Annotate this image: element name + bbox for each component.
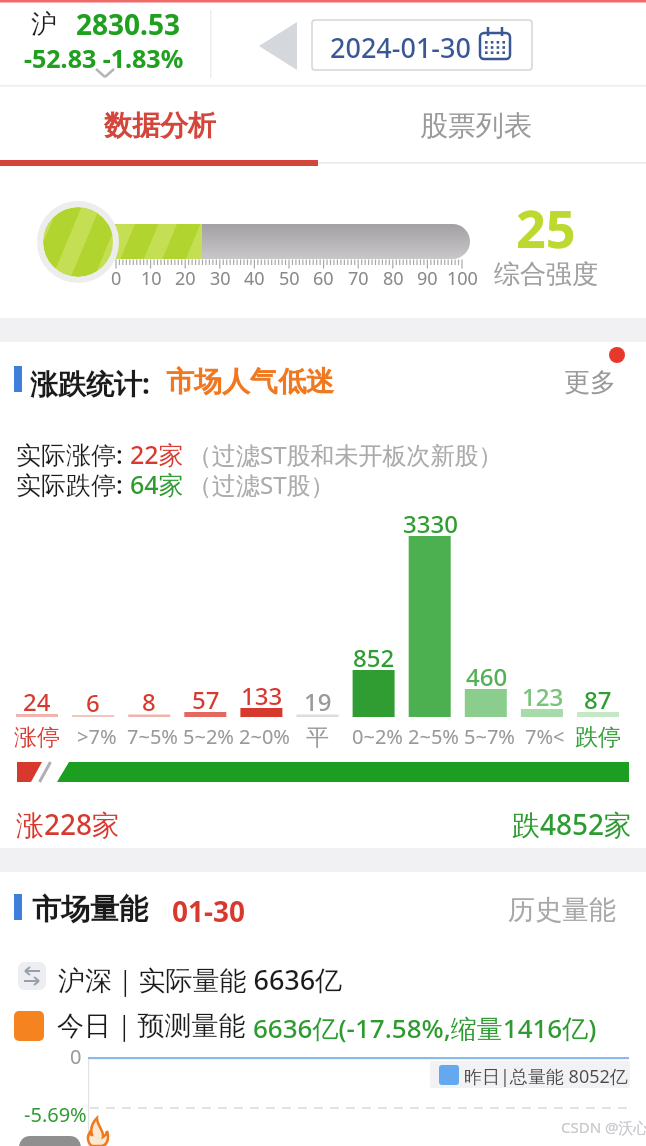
staticText: 7%< <box>525 723 565 750</box>
staticText: 852 <box>353 641 395 674</box>
staticText: 今日｜预测量能 <box>57 1009 246 1043</box>
staticText: 22家 <box>130 437 184 471</box>
staticText: 市场人气低迷 <box>166 364 334 399</box>
staticText: 涨停 <box>14 723 60 752</box>
button[interactable] <box>312 20 532 70</box>
staticText: 跌停 <box>575 723 621 752</box>
staticText: 实际跌停: <box>16 467 123 501</box>
staticText: 5~2% <box>183 723 234 750</box>
staticText: 57 <box>192 683 220 716</box>
button[interactable] <box>250 14 306 76</box>
staticText: >7% <box>77 723 117 750</box>
staticText: 30 <box>210 266 231 291</box>
staticText: 2024-01-30 <box>330 29 471 66</box>
staticText: 60 <box>313 266 334 291</box>
staticText: 19 <box>304 685 332 718</box>
staticText: 3330 <box>403 507 458 540</box>
staticText: -52.83 -1.83% <box>24 41 184 75</box>
staticText: 7~5% <box>127 723 178 750</box>
staticText: -5.69% <box>24 1101 87 1128</box>
staticText: 数据分析 <box>104 108 216 143</box>
staticText: 市场量能 <box>32 891 148 928</box>
staticText: 沪 <box>31 8 57 41</box>
staticText: 50 <box>279 266 300 291</box>
staticText: CSDN @沃心 <box>561 1117 646 1137</box>
staticText: 80 <box>383 266 404 291</box>
staticText: 0 <box>70 1043 82 1070</box>
staticText: 实际涨停: <box>16 437 123 471</box>
staticText: 2830.53 <box>76 5 180 43</box>
staticText: （过滤ST股） <box>188 468 335 501</box>
staticText: 跌4852家 <box>512 805 633 843</box>
staticText: 10 <box>141 266 162 291</box>
staticText: 460 <box>466 660 508 693</box>
staticText: 5~7% <box>464 723 515 750</box>
staticText: 2~0% <box>239 723 290 750</box>
button[interactable] <box>550 350 646 402</box>
staticText: 8 <box>142 685 156 718</box>
staticText: 0~2% <box>352 723 403 750</box>
staticText: 6636亿(-17.58%,缩量1416亿) <box>253 1010 597 1046</box>
staticText: 6 <box>86 686 100 719</box>
staticText: （过滤ST股和未开板次新股） <box>188 438 503 471</box>
staticText: 沪深｜实际量能 6636亿 <box>58 961 343 998</box>
staticText: 24 <box>23 685 51 718</box>
staticText: 涨跌统计: <box>30 364 150 402</box>
staticText: 2~5% <box>408 723 459 750</box>
staticText: 股票列表 <box>420 108 532 143</box>
staticText: 70 <box>348 266 369 291</box>
staticText: 昨日|总量能 8052亿 <box>464 1064 628 1089</box>
staticText: 133 <box>241 679 283 712</box>
staticText: 90 <box>417 266 438 291</box>
staticText: 100 <box>447 266 478 291</box>
staticText: 涨228家 <box>16 805 121 843</box>
staticText: 25 <box>516 192 576 263</box>
staticText: 40 <box>244 266 265 291</box>
staticText: 20 <box>175 266 196 291</box>
staticText: 123 <box>522 680 564 713</box>
staticText: 平 <box>306 723 329 752</box>
staticText: 历史量能 <box>508 893 616 927</box>
button[interactable] <box>495 880 646 932</box>
staticText: 综合强度 <box>494 258 598 291</box>
staticText: 64家 <box>130 467 184 501</box>
staticText: 更多 <box>564 366 616 399</box>
button[interactable] <box>0 88 323 160</box>
staticText: 0 <box>111 266 122 291</box>
staticText: 87 <box>584 683 612 716</box>
button[interactable] <box>323 88 646 160</box>
staticText: 01-30 <box>172 892 246 930</box>
